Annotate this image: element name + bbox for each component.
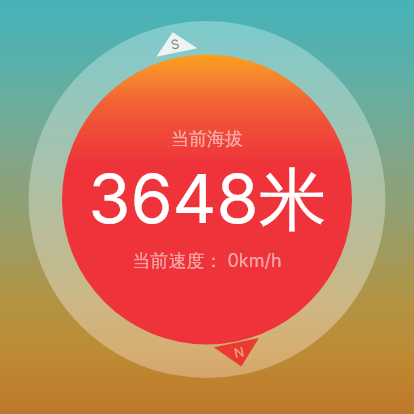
staticText: 当前速度： 0km/h [132, 250, 282, 273]
staticText: S [169, 35, 181, 53]
other: Altitude compass dial [0, 0, 414, 414]
staticText: 3648米 [88, 157, 327, 243]
staticText: N [232, 343, 246, 361]
staticText: 当前海拔 [171, 128, 243, 151]
